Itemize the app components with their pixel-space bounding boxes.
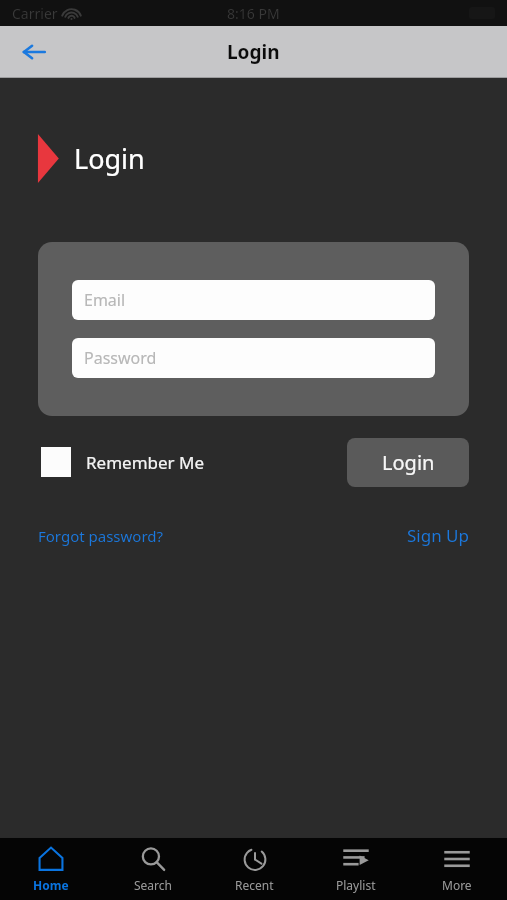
button[interactable]: Remember Me: [38, 447, 205, 477]
button[interactable]: Back: [10, 28, 58, 76]
button[interactable]: Email: [72, 280, 435, 320]
staticText: Recent: [235, 877, 274, 893]
staticText: Carrier: [12, 4, 58, 23]
button[interactable]: Login: [347, 438, 469, 487]
button[interactable]: Sign Up: [407, 520, 469, 551]
button[interactable]: Playlist: [305, 838, 406, 900]
staticText: Login: [227, 39, 280, 65]
button[interactable]: More: [406, 838, 507, 900]
staticText: Login: [382, 449, 435, 476]
staticText: More: [442, 877, 472, 893]
button[interactable]: Search: [102, 838, 204, 900]
staticText: Password: [84, 347, 157, 369]
staticText: Login: [74, 140, 145, 177]
button[interactable]: Home: [0, 838, 102, 900]
button[interactable]: Recent: [204, 838, 305, 900]
staticText: Sign Up: [407, 524, 469, 547]
staticText: Home: [33, 877, 69, 893]
staticText: Playlist: [336, 877, 376, 893]
button[interactable]: Forgot password?: [38, 522, 164, 550]
staticText: Email: [84, 289, 126, 311]
staticText: Search: [134, 877, 172, 893]
staticText: Remember Me: [86, 451, 205, 474]
staticText: Forgot password?: [38, 526, 164, 546]
staticText: 8:16 PM: [227, 4, 280, 23]
button[interactable]: Password: [72, 338, 435, 378]
